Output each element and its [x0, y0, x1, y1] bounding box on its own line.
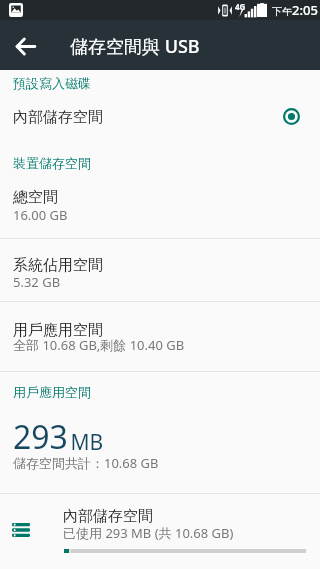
- staticText: 用戶應用空間: [13, 321, 103, 340]
- staticText: 用戶應用空間: [13, 384, 91, 400]
- button[interactable]: 系統佔用空間: [0, 239, 320, 301]
- staticText: 總空間: [13, 188, 58, 207]
- staticText: 預設寫入磁碟: [13, 75, 91, 91]
- staticText: 4G: [235, 1, 246, 12]
- staticText: 2:05: [292, 1, 318, 19]
- staticText: 293: [13, 415, 68, 459]
- button[interactable]: 用戶應用空間: [0, 302, 320, 371]
- button[interactable]: 內部儲存空間: [0, 95, 320, 141]
- staticText: 下午: [272, 5, 292, 18]
- staticText: 5.32 GB: [13, 273, 61, 291]
- staticText: 全部 10.68 GB,剩餘 10.40 GB: [13, 336, 185, 354]
- staticText: MB: [65, 428, 104, 457]
- staticText: 系統佔用空間: [13, 256, 103, 275]
- button[interactable]: 內部儲存空間: [0, 494, 320, 569]
- button[interactable]: 總空間: [0, 176, 320, 238]
- button[interactable]: Back: [0, 22, 46, 68]
- staticText: 儲存空間共計：10.68 GB: [13, 454, 159, 472]
- staticText: 裝置儲存空間: [13, 155, 91, 171]
- staticText: 已使用 293 MB (共 10.68 GB): [63, 524, 234, 542]
- staticText: 儲存空間與 USB: [70, 34, 200, 59]
- staticText: 內部儲存空間: [13, 108, 103, 127]
- staticText: 16.00 GB: [13, 206, 68, 224]
- staticText: 內部儲存空間: [63, 507, 153, 526]
